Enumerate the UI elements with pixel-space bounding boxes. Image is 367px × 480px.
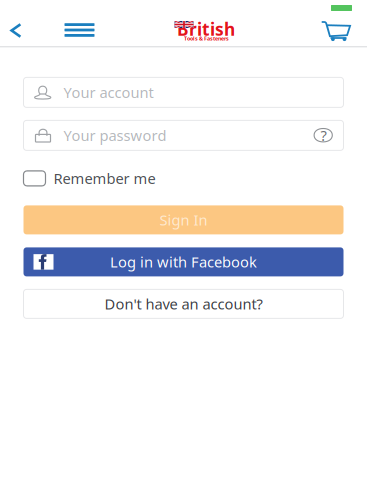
button[interactable]: Don't have an account? [23, 289, 343, 318]
button[interactable]: Sign In [23, 205, 343, 234]
staticText: British [177, 17, 235, 40]
staticText: Tools & Fasteners [184, 35, 229, 42]
staticText: ? [320, 126, 326, 145]
staticText: Your password [63, 126, 166, 145]
staticText: Your account [63, 83, 153, 102]
staticText: Remember me [53, 169, 155, 188]
button[interactable]: Log in with Facebook [23, 247, 343, 276]
staticText: Log in with Facebook [110, 252, 257, 272]
button[interactable]: Menu [63, 0, 96, 46]
staticText: Sign In [159, 210, 207, 230]
staticText: Don't have an account? [104, 294, 262, 314]
button[interactable]: Back [0, 0, 33, 46]
button[interactable]: Shopping cart [317, 0, 355, 46]
button[interactable]: Remember me [23, 170, 155, 186]
